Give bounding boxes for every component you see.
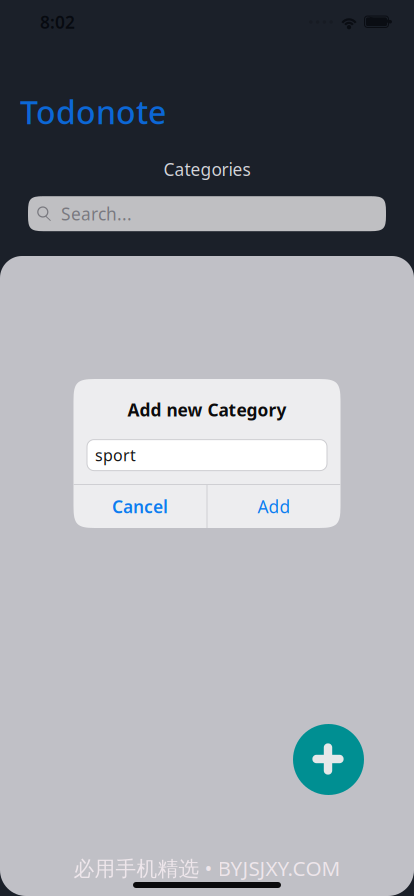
staticText: sport	[95, 444, 136, 466]
button[interactable]: Cancel	[73, 485, 206, 528]
staticText: 必用手机精选 • BYJSJXY.COM	[73, 854, 340, 882]
staticText: 8:02	[40, 10, 75, 34]
staticText: Add new Category	[127, 398, 286, 422]
button[interactable]: Add	[207, 485, 340, 528]
staticText: Todonote	[20, 90, 166, 134]
staticText: Cancel	[112, 495, 168, 518]
staticText: Categories	[163, 158, 250, 181]
button[interactable]: Search...	[28, 196, 386, 231]
staticText: Search...	[61, 202, 132, 225]
staticText: Add	[257, 495, 290, 518]
button[interactable]: Add category	[293, 724, 364, 795]
